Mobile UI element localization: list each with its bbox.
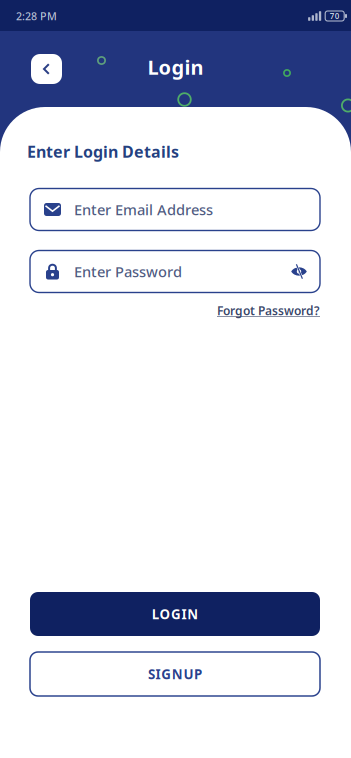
button[interactable]: SIGNUP bbox=[30, 652, 320, 696]
button[interactable]: Enter Email Address bbox=[30, 188, 320, 230]
staticText: 2:28 PM bbox=[16, 9, 57, 23]
staticText: LOGIN bbox=[152, 605, 198, 623]
staticText: Enter Email Address bbox=[74, 200, 213, 219]
staticText: Login bbox=[147, 54, 203, 80]
staticText: SIGNUP bbox=[148, 665, 202, 683]
button[interactable] bbox=[290, 262, 308, 280]
staticText: 70 bbox=[330, 11, 340, 21]
button[interactable]: LOGIN bbox=[30, 592, 320, 636]
staticText: Enter Password bbox=[74, 262, 182, 281]
staticText: Forgot Password? bbox=[217, 302, 320, 318]
button[interactable]: Forgot Password? bbox=[0, 302, 351, 318]
button[interactable] bbox=[31, 54, 62, 84]
staticText: Enter Login Details bbox=[27, 141, 179, 162]
button[interactable]: Enter Password bbox=[30, 250, 320, 292]
